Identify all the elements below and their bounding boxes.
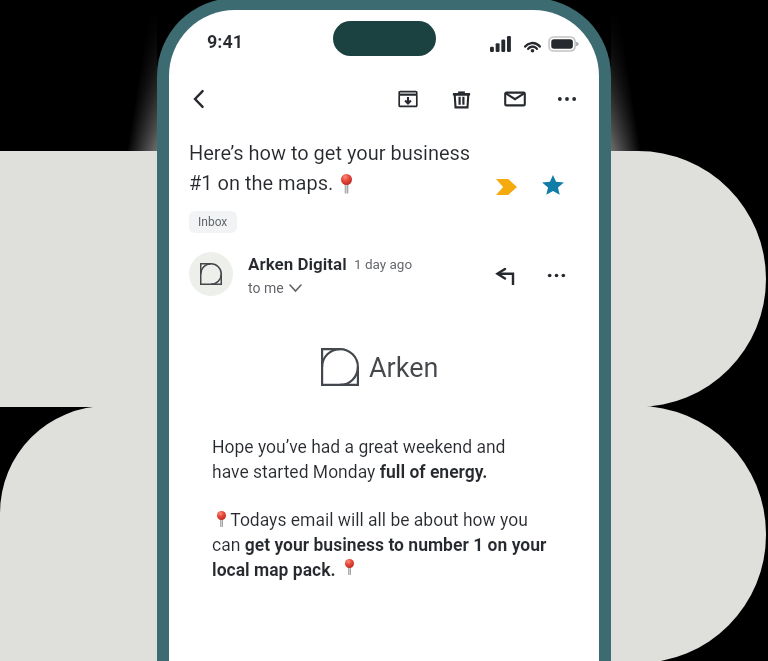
staticText: 1 day ago	[354, 256, 413, 272]
button[interactable]: Delete	[443, 81, 479, 117]
button[interactable]: More options	[549, 81, 585, 117]
staticText: Arken Digital	[248, 254, 347, 274]
staticText: to me	[248, 280, 284, 296]
button[interactable]: More	[538, 257, 574, 293]
button[interactable]: Archive	[390, 81, 426, 117]
button[interactable]: Mark unread	[497, 81, 533, 117]
button[interactable]: Label	[488, 169, 524, 205]
button[interactable]: Star	[535, 167, 571, 203]
button[interactable]: Back	[181, 81, 217, 117]
staticText: Todays email will all be about how you c…	[212, 510, 547, 580]
button[interactable]: Reply	[489, 259, 525, 295]
button[interactable]: to me	[248, 280, 301, 296]
staticText: 9:41	[207, 31, 244, 52]
button[interactable]: Inbox	[189, 211, 237, 233]
staticText: Here’s how to get your business #1 on th…	[189, 141, 471, 195]
staticText: Arken	[369, 352, 439, 384]
staticText: Hope you’ve had a great weekend and have…	[212, 437, 506, 482]
staticText: Inbox	[198, 215, 228, 229]
